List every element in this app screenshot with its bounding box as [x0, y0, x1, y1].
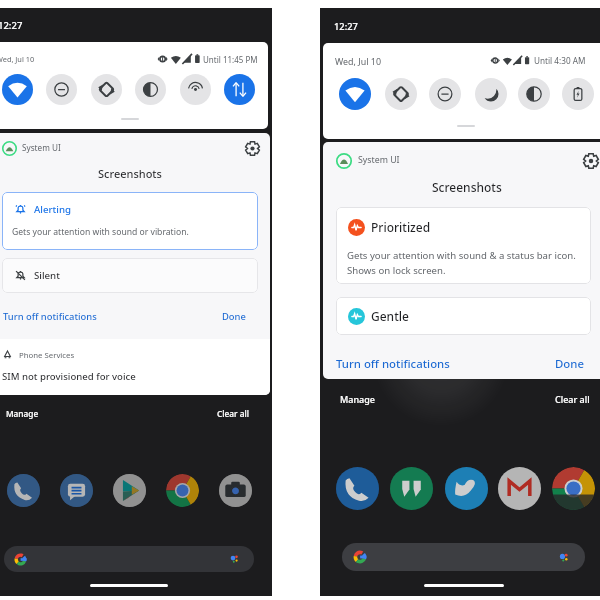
- staticText: SIM not provisioned for voice: [2, 370, 136, 383]
- button[interactable]: App: [552, 467, 595, 510]
- button[interactable]: App: [445, 467, 488, 510]
- button[interactable]: App: [498, 467, 541, 510]
- button[interactable]: Search: [342, 543, 585, 571]
- button[interactable]: Prioritized: [336, 207, 591, 284]
- staticText: Gets your attention with sound or vibrat…: [12, 226, 189, 238]
- button[interactable]: App: [7, 474, 40, 507]
- button[interactable]: Settings: [243, 139, 262, 158]
- button[interactable]: App: [219, 474, 252, 507]
- staticText: Screenshots: [432, 179, 502, 195]
- button[interactable]: App: [166, 474, 199, 507]
- button[interactable]: Clear all: [217, 408, 249, 419]
- button[interactable]: Clear all: [555, 393, 590, 405]
- button[interactable]: Turn off notifications: [336, 356, 450, 372]
- staticText: Done: [222, 310, 246, 323]
- staticText: System UI: [358, 154, 400, 166]
- button[interactable]: Quick setting: [180, 74, 211, 105]
- staticText: Until 11:45 PM: [203, 54, 258, 65]
- staticText: 12:27: [0, 19, 23, 32]
- staticText: Clear all: [217, 408, 249, 419]
- button[interactable]: App: [390, 467, 433, 510]
- button[interactable]: Silent: [2, 258, 258, 293]
- button[interactable]: App: [60, 474, 93, 507]
- staticText: Turn off notifications: [336, 356, 450, 372]
- staticText: Turn off notifications: [3, 310, 97, 323]
- staticText: Gets your attention with sound & a statu…: [347, 249, 576, 277]
- button[interactable]: Quick setting: [2, 74, 33, 105]
- button[interactable]: App: [113, 474, 146, 507]
- button[interactable]: Done: [222, 310, 246, 323]
- staticText: Wed, Jul 10: [0, 54, 35, 64]
- button[interactable]: Manage: [6, 408, 39, 419]
- button[interactable]: Quick setting: [46, 74, 77, 105]
- button[interactable]: Quick setting: [562, 78, 594, 110]
- button[interactable]: Quick setting: [224, 74, 255, 105]
- staticText: Manage: [6, 408, 39, 419]
- button[interactable]: Done: [555, 356, 584, 372]
- button[interactable]: App: [336, 467, 379, 510]
- button[interactable]: Quick setting: [518, 78, 550, 110]
- button[interactable]: Turn off notifications: [3, 310, 97, 323]
- button[interactable]: Manage: [340, 393, 375, 405]
- button[interactable]: Quick setting: [385, 78, 417, 110]
- button[interactable]: Quick setting: [429, 78, 461, 110]
- button[interactable]: Search: [4, 546, 254, 572]
- staticText: Done: [555, 356, 584, 372]
- staticText: Until 4:30 AM: [534, 55, 586, 66]
- button[interactable]: Quick setting: [339, 78, 371, 110]
- staticText: 12:27: [334, 20, 358, 33]
- staticText: Silent: [34, 269, 60, 282]
- staticText: Clear all: [555, 393, 590, 405]
- staticText: System UI: [22, 142, 61, 153]
- button[interactable]: Alerting: [2, 192, 258, 250]
- button[interactable]: Quick setting: [91, 74, 122, 105]
- staticText: Screenshots: [98, 166, 162, 181]
- staticText: Wed, Jul 10: [335, 55, 381, 67]
- staticText: Manage: [340, 393, 375, 405]
- staticText: Prioritized: [371, 219, 431, 235]
- staticText: Phone Services: [19, 350, 75, 361]
- staticText: Gentle: [371, 308, 409, 324]
- staticText: Alerting: [34, 203, 72, 216]
- button[interactable]: Settings: [581, 151, 600, 171]
- button[interactable]: Quick setting: [135, 74, 166, 105]
- button[interactable]: Gentle: [336, 297, 591, 335]
- button[interactable]: Quick setting: [475, 78, 507, 110]
